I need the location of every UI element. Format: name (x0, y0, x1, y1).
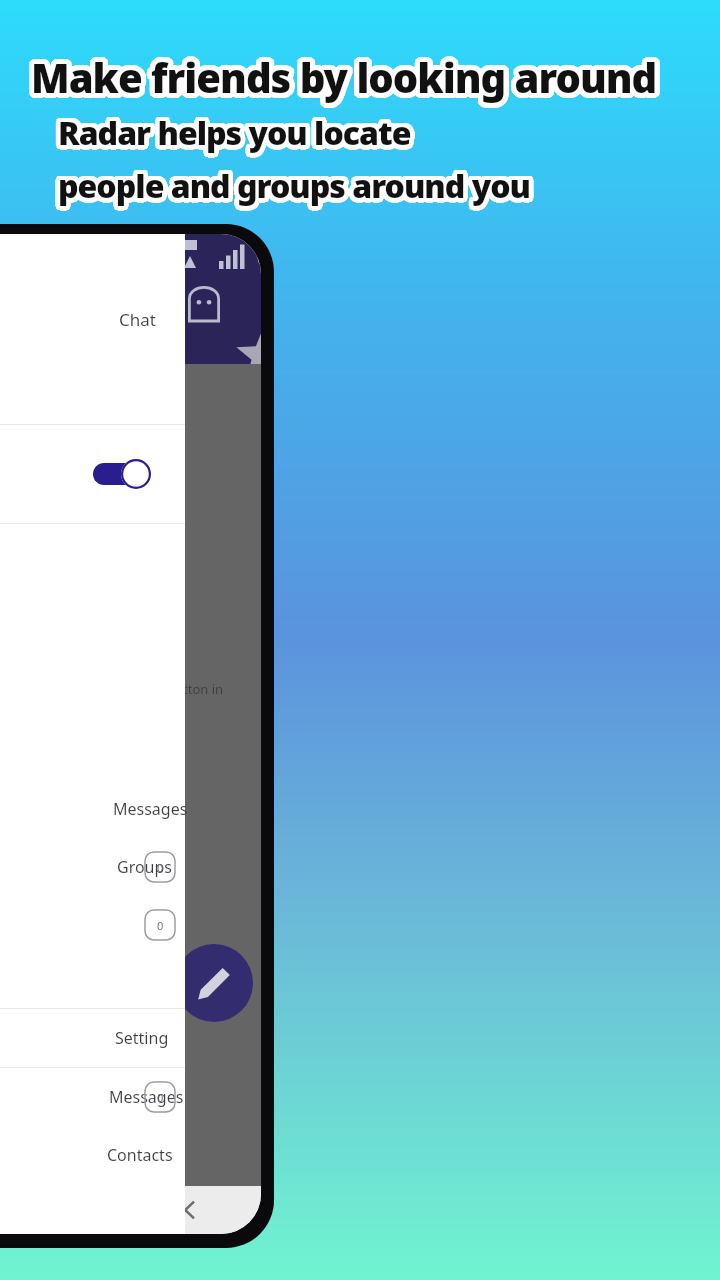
staticText: tton in (183, 680, 224, 698)
button[interactable]: Chat (0, 298, 185, 340)
button[interactable]: Toggle switch (93, 459, 151, 489)
button[interactable]: Compose message (175, 944, 253, 1022)
other: Status (179, 238, 261, 262)
staticText: Setting (115, 1027, 169, 1049)
button[interactable]: Groups (0, 838, 185, 896)
staticText: Messages (113, 798, 188, 820)
staticText: Messages (109, 1086, 184, 1108)
button[interactable]: Back (169, 1189, 211, 1231)
button[interactable]: Setting (0, 1009, 185, 1067)
button[interactable]: Toggle switch (0, 425, 185, 523)
button[interactable]: 0 (0, 896, 185, 954)
other: Ghost (187, 282, 221, 321)
staticText: 0 (157, 1090, 164, 1105)
staticText: 0 (157, 918, 164, 933)
button[interactable]: Messages (0, 780, 185, 838)
staticText: Contacts (107, 1144, 173, 1166)
button[interactable]: Contacts (0, 1126, 185, 1184)
staticText: Chat (119, 308, 156, 331)
staticText: 0 (157, 860, 164, 875)
button[interactable]: Messages (0, 1068, 185, 1126)
staticText: Groups (117, 856, 173, 878)
